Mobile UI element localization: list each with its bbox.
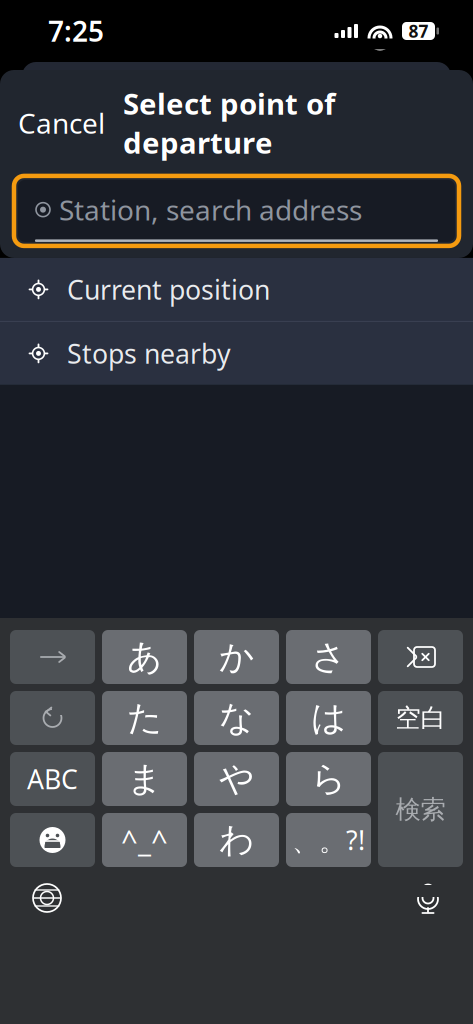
- button[interactable]: か: [194, 630, 279, 684]
- button[interactable]: [10, 813, 95, 867]
- staticText: は: [311, 697, 346, 739]
- button[interactable]: 、。?!: [286, 813, 371, 867]
- staticText: 空白: [395, 702, 445, 733]
- button[interactable]: ^_^: [102, 813, 187, 867]
- staticText: さ: [311, 636, 346, 678]
- button[interactable]: わ: [194, 813, 279, 867]
- staticText: わ: [219, 819, 254, 861]
- button[interactable]: 空白: [378, 691, 463, 745]
- button[interactable]: さ: [286, 630, 371, 684]
- staticText: ら: [311, 758, 346, 800]
- button[interactable]: [10, 691, 95, 745]
- staticText: た: [127, 697, 162, 739]
- staticText: 検索: [395, 794, 445, 825]
- button[interactable]: Switch keyboard: [10, 873, 84, 923]
- staticText: Current position: [67, 272, 270, 307]
- staticText: Cancel: [18, 104, 105, 142]
- staticText: や: [219, 758, 254, 800]
- staticText: あ: [127, 636, 162, 678]
- button[interactable]: ら: [286, 752, 371, 806]
- staticText: Stops nearby: [67, 336, 231, 371]
- button[interactable]: ABC: [10, 752, 95, 806]
- button[interactable]: Dictation: [393, 875, 463, 921]
- staticText: 7:25: [48, 12, 104, 50]
- staticText: Select point of departure: [123, 84, 335, 162]
- staticText: か: [219, 636, 254, 678]
- button[interactable]: は: [286, 691, 371, 745]
- button[interactable]: あ: [102, 630, 187, 684]
- button[interactable]: Current position: [0, 258, 473, 321]
- button[interactable]: ま: [102, 752, 187, 806]
- button[interactable]: や: [194, 752, 279, 806]
- button[interactable]: Stops nearby: [0, 322, 473, 385]
- staticText: 87: [408, 19, 428, 42]
- staticText: 、。?!: [292, 822, 365, 858]
- button[interactable]: Station, search address: [0, 180, 473, 242]
- button[interactable]: [10, 630, 95, 684]
- staticText: な: [219, 697, 254, 739]
- button[interactable]: 検索: [378, 752, 463, 867]
- staticText: Station, search address: [59, 191, 362, 228]
- button[interactable]: [378, 630, 463, 684]
- staticText: ^_^: [121, 820, 168, 859]
- button[interactable]: Cancel: [0, 94, 123, 152]
- button[interactable]: た: [102, 691, 187, 745]
- staticText: ABC: [27, 761, 78, 797]
- staticText: ま: [127, 758, 162, 800]
- button[interactable]: な: [194, 691, 279, 745]
